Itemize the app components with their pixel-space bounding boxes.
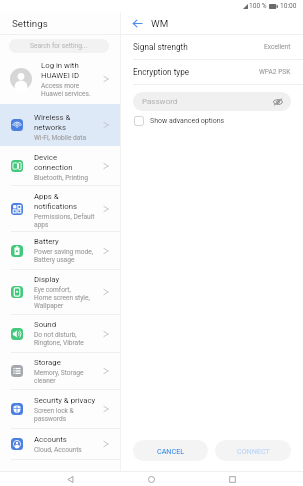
button[interactable]: Battery <box>0 232 120 269</box>
button[interactable]: Storage <box>0 353 120 389</box>
staticText: CANCEL <box>157 447 185 455</box>
staticText: CONNECT <box>237 447 270 455</box>
staticText: Sound <box>34 320 57 329</box>
staticText: Show advanced options <box>150 117 225 125</box>
button[interactable]: Sound <box>0 315 120 352</box>
button[interactable]: CANCEL <box>133 440 208 461</box>
staticText: 100 % <box>249 2 267 10</box>
staticText: Accounts <box>34 435 67 444</box>
staticText: Storage <box>34 358 61 367</box>
staticText: Access more Huawei services. <box>41 82 91 98</box>
button[interactable]: Search for setting... <box>9 39 109 53</box>
button[interactable]: Encryption type <box>121 60 303 84</box>
staticText: Password <box>142 97 178 106</box>
button[interactable]: Security & privacy <box>0 390 120 428</box>
staticText: Screen lock & passwords <box>34 407 74 423</box>
staticText: WPA2 PSK <box>259 68 291 76</box>
button[interactable]: Password <box>133 92 291 111</box>
staticText: Signal strength <box>133 42 188 52</box>
button[interactable]: CONNECT <box>215 440 291 461</box>
button[interactable]: Log in with HUAWEI ID <box>0 54 120 104</box>
button[interactable]: Show advanced options <box>134 116 225 126</box>
button[interactable]: Display <box>0 270 120 314</box>
staticText: Bluetooth, Printing <box>34 174 88 182</box>
staticText: 10:00 <box>280 2 297 10</box>
staticText: Wireless & networks <box>34 113 71 132</box>
staticText: Cloud, Accounts <box>34 446 82 454</box>
button[interactable]: Show password <box>272 96 284 108</box>
button[interactable]: Smart assistance <box>0 474 120 486</box>
staticText: WM <box>151 18 169 29</box>
staticText: Display <box>34 275 60 284</box>
staticText: Permissions, Default apps <box>34 213 95 229</box>
staticText: Power saving mode, Battery usage <box>34 248 93 264</box>
staticText: Apps & notifications <box>34 192 78 211</box>
button[interactable]: Back <box>60 472 80 486</box>
staticText: Device connection <box>34 153 73 172</box>
staticText: Log in with HUAWEI ID <box>41 61 79 80</box>
staticText: Do not disturb, Ringtone, Vibrate <box>34 331 84 347</box>
button[interactable]: Recents <box>222 472 242 486</box>
button[interactable]: Wireless & networks <box>0 104 120 146</box>
button[interactable]: Device connection <box>0 146 120 185</box>
staticText: Excellent <box>264 43 291 51</box>
staticText: Eye comfort, Home screen style, Wallpape… <box>34 286 90 310</box>
staticText: Security & privacy <box>34 396 96 405</box>
staticText: Wi-Fi, Mobile data <box>34 134 87 142</box>
staticText: Search for setting... <box>30 42 88 50</box>
button[interactable]: Accounts <box>0 429 120 459</box>
button[interactable]: Signal strength <box>121 35 303 59</box>
button[interactable]: Back <box>132 18 143 29</box>
staticText: Settings <box>12 18 48 29</box>
button[interactable]: Apps & notifications <box>0 186 120 231</box>
staticText: Memory, Storage cleaner <box>34 369 84 385</box>
staticText: Encryption type <box>133 67 190 77</box>
staticText: Battery <box>34 237 59 246</box>
button[interactable]: Home <box>141 472 161 486</box>
